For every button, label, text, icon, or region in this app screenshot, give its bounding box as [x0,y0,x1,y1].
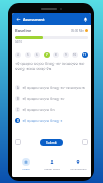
button[interactable]: 10 [72,52,78,58]
staticText: Leader board [44,167,60,170]
button[interactable]: B [15,93,88,104]
button[interactable]: C [15,104,88,115]
staticText: 10 [73,53,77,57]
staticText: 4 [17,53,19,57]
button[interactable]: Previous question [15,139,21,145]
staticText: 6 [36,53,38,57]
staticText: 9 [65,53,67,57]
staticText: 05:00 Min [71,29,84,33]
staticText: Submit [46,141,57,145]
button[interactable]: D [15,115,88,126]
staticText: 04/10 [15,40,22,44]
button[interactable]: Leader board [39,156,65,170]
staticText: A [17,86,19,90]
staticText: ଏହି ପ୍ରଶ୍ନର ଉତ୍ତର ଦିଅନ୍ତୁ ଏବ [22,97,65,101]
staticText: ଏହି ପ୍ରଶ୍ନର ଉତ୍ତର ଦିଅନ୍ତୁ ଏ [22,119,63,123]
button[interactable]: 6 [34,52,40,58]
staticText: କରନ୍ତୁ ଏଠାରେ ସମସ୍ତ ବିଷ [15,66,52,71]
button[interactable]: 5 [25,52,31,58]
staticText: ଏହି ପ୍ରଶ୍ନର ଉତ୍ତର ଦିଅ [22,108,55,112]
button[interactable]: A [15,82,88,93]
staticText: 11 [83,53,87,57]
button[interactable]: 4 [15,52,21,58]
button[interactable]: 9 [63,52,69,58]
staticText: 8 [55,53,57,57]
staticText: B [17,97,19,101]
staticText: Home [22,167,30,170]
staticText: ଏହି ପ୍ରଶ୍ନର ଉତ୍ତର ଦିଅନ୍ତୁ ଏବଂ ଆପଣଙ୍କର ଜ୍… [22,86,85,90]
button[interactable]: Back [14,15,22,23]
button[interactable]: 8 [53,52,59,58]
staticText: My Bookmark [70,167,87,170]
staticText: Assessment [23,17,45,22]
button[interactable]: Home [12,156,39,170]
button[interactable]: 7 [44,52,50,58]
staticText: Baseline [15,28,32,33]
staticText: 7 [46,53,48,57]
button[interactable]: Submit [40,139,63,146]
staticText: ଏହି ପ୍ରଶ୍ନର ଉତ୍ତର ଦିଅନ୍ତୁ ଏବଂ ଆପଣଙ୍କର ଜ୍… [15,61,88,66]
staticText: 5 [27,53,29,57]
button[interactable]: 11 [82,52,88,58]
staticText: C [17,108,19,112]
button[interactable]: Next question [82,139,88,145]
staticText: D [17,119,19,123]
button[interactable]: My Bookmark [65,156,91,170]
button[interactable]: Notifications [81,15,89,23]
